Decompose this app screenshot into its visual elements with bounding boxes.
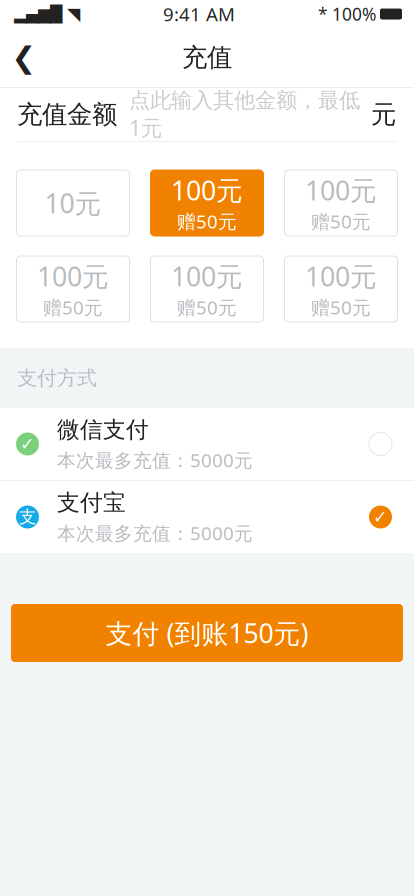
staticText: ✓ — [20, 434, 35, 454]
button[interactable]: 支付 (到账150元) — [11, 604, 403, 662]
button[interactable]: 支 — [0, 481, 414, 553]
staticText: 100元 — [305, 172, 377, 208]
button[interactable]: 100元 — [16, 256, 129, 322]
button[interactable]: Back — [0, 32, 48, 82]
staticText: 充值金额 — [17, 99, 117, 130]
staticText: 支付宝 — [57, 489, 126, 516]
staticText: 元 — [371, 99, 396, 130]
button[interactable]: 100元 — [150, 256, 263, 322]
button[interactable]: 100元 — [284, 170, 397, 236]
staticText: 赠50元 — [177, 209, 237, 234]
staticText: 本次最多充值：5000元 — [57, 520, 253, 545]
staticText: ◥ — [67, 4, 80, 24]
staticText: 9:41 AM — [163, 2, 235, 26]
staticText: 100% — [332, 2, 376, 25]
staticText: 点此输入其他金额，最低1元 — [129, 87, 360, 142]
staticText: 本次最多充值：5000元 — [57, 447, 253, 472]
staticText: 充值 — [182, 42, 232, 73]
staticText: 100元 — [171, 172, 243, 208]
staticText: 赠50元 — [311, 209, 371, 234]
staticText: 10元 — [44, 185, 101, 221]
staticText: 支付方式 — [17, 366, 97, 390]
staticText: 赠50元 — [177, 295, 237, 320]
staticText: 微信支付 — [57, 416, 149, 443]
staticText: ✓ — [373, 507, 388, 527]
staticText: 赠50元 — [43, 295, 103, 320]
button[interactable]: 100元 — [284, 256, 397, 322]
button[interactable]: 100元 — [150, 170, 263, 236]
staticText: 100元 — [305, 258, 377, 294]
button[interactable]: 10元 — [16, 170, 129, 236]
staticText: 支 — [19, 506, 36, 528]
staticText: 100元 — [171, 258, 243, 294]
staticText: 赠50元 — [311, 295, 371, 320]
staticText: * — [318, 2, 328, 25]
button[interactable]: ✓ — [0, 408, 414, 480]
staticText: 支付 (到账150元) — [105, 615, 308, 651]
staticText: 100元 — [37, 258, 109, 294]
staticText: ▂▄▆█ — [14, 5, 62, 23]
staticText: ❮ — [11, 41, 36, 74]
